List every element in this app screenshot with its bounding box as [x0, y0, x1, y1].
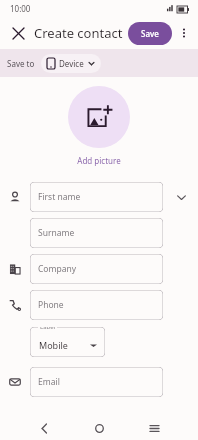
staticText: 10:00 [10, 3, 31, 14]
button[interactable]: Phone [30, 290, 163, 320]
button[interactable]: Surname [30, 218, 163, 248]
staticText: Create contact [34, 24, 123, 42]
staticText: Surname [38, 227, 75, 239]
button[interactable]: Save [128, 22, 172, 45]
button[interactable]: First name [30, 182, 163, 212]
button[interactable]: Add picture [68, 86, 130, 148]
button[interactable]: Company [30, 254, 163, 284]
button[interactable]: Back [33, 417, 55, 439]
button[interactable]: Device [41, 54, 101, 73]
button[interactable]: Expand name fields [170, 186, 192, 208]
staticText: Add picture [77, 155, 121, 166]
staticText: First name [38, 191, 81, 203]
button[interactable]: Close [6, 21, 30, 45]
staticText: Company [38, 263, 77, 275]
button[interactable]: Email [30, 367, 163, 397]
staticText: Label [40, 327, 56, 331]
staticText: Device [59, 58, 84, 69]
staticText: Mobile [39, 339, 68, 351]
button[interactable]: Home [88, 417, 110, 439]
button[interactable]: More options [173, 22, 195, 44]
button[interactable]: Label [30, 327, 105, 357]
staticText: Phone [38, 299, 64, 311]
staticText: Save [141, 28, 159, 39]
staticText: Save to [7, 58, 35, 69]
staticText: Email [38, 376, 60, 388]
button[interactable]: Recent apps [143, 417, 165, 439]
